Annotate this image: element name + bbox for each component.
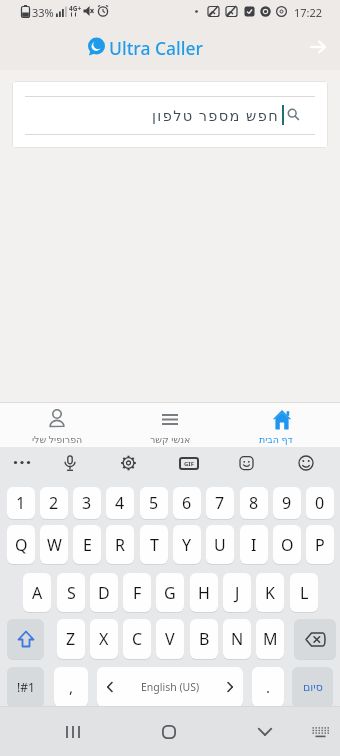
staticText: S	[67, 582, 76, 604]
button[interactable]	[7, 619, 44, 659]
button[interactable]	[13, 460, 31, 465]
staticText: C	[132, 628, 143, 650]
button[interactable]: N	[223, 619, 251, 659]
staticText: L	[300, 582, 309, 604]
staticText: חפש מספר טלפון	[152, 105, 280, 125]
button[interactable]: F	[123, 573, 151, 612]
button[interactable]: K	[256, 573, 284, 612]
button[interactable]: 5	[140, 487, 168, 519]
staticText: הפרופיל שלי	[32, 433, 83, 446]
button[interactable]	[310, 40, 327, 54]
staticText: M	[263, 628, 278, 650]
button[interactable]: B	[190, 619, 218, 659]
button[interactable]	[312, 727, 329, 738]
button[interactable]: 0	[306, 487, 334, 519]
button[interactable]	[239, 455, 254, 471]
staticText: H	[198, 582, 210, 604]
button[interactable]: G	[156, 573, 184, 612]
staticText: 4G+	[69, 4, 82, 13]
button[interactable]: C	[123, 619, 151, 659]
staticText: !#1	[17, 679, 35, 695]
button[interactable]: D	[90, 573, 118, 612]
button[interactable]	[121, 455, 136, 471]
staticText: D	[98, 582, 110, 604]
button[interactable]: I	[240, 525, 268, 564]
button[interactable]: 9	[273, 487, 301, 519]
staticText: GIF	[184, 460, 194, 468]
button[interactable]	[294, 619, 336, 659]
staticText: 3	[82, 492, 92, 514]
staticText: English (US)	[141, 680, 200, 694]
staticText: .	[266, 677, 271, 697]
button[interactable]: הפרופיל שלי	[17, 403, 97, 447]
button[interactable]: 7	[206, 487, 234, 519]
button[interactable]: 3	[73, 487, 101, 519]
button[interactable]: 2	[40, 487, 68, 519]
staticText: I	[251, 534, 257, 556]
button[interactable]: אנשי קשר	[130, 403, 210, 447]
staticText: ,	[69, 677, 74, 697]
button[interactable]: V	[156, 619, 184, 659]
staticText: 6	[182, 492, 192, 514]
button[interactable]: L	[290, 573, 318, 612]
staticText: Z	[66, 628, 76, 650]
staticText: 5	[149, 492, 159, 514]
button[interactable]: O	[273, 525, 301, 564]
button[interactable]: S	[57, 573, 85, 612]
button[interactable]: T	[140, 525, 168, 564]
staticText: R	[115, 534, 125, 556]
button[interactable]: R	[106, 525, 134, 564]
button[interactable]	[258, 728, 272, 736]
staticText: סיום	[303, 681, 323, 694]
button[interactable]: 6	[173, 487, 201, 519]
staticText: N	[231, 628, 244, 650]
staticText: Y	[182, 534, 192, 556]
staticText: J	[235, 582, 240, 604]
button[interactable]: English (US)	[97, 667, 243, 707]
button[interactable]: W	[40, 525, 68, 564]
staticText: K	[265, 582, 275, 604]
staticText: B	[199, 628, 210, 650]
button[interactable]: ,	[54, 667, 88, 707]
button[interactable]	[298, 455, 314, 471]
staticText: Q	[15, 534, 28, 556]
button[interactable]: A	[23, 573, 51, 612]
staticText: W	[47, 534, 62, 556]
button[interactable]: E	[73, 525, 101, 564]
staticText: 8	[249, 492, 259, 514]
button[interactable]	[66, 726, 80, 738]
button[interactable]: X	[90, 619, 118, 659]
button[interactable]: GIF	[179, 457, 199, 470]
button[interactable]: Q	[7, 525, 35, 564]
button[interactable]: P	[306, 525, 334, 564]
staticText: 17:22	[294, 5, 323, 20]
staticText: T	[150, 534, 159, 556]
button[interactable]: .	[252, 667, 284, 707]
button[interactable]: Y	[173, 525, 201, 564]
button[interactable]: חפש מספר טלפון	[12, 81, 328, 148]
button[interactable]: Z	[57, 619, 85, 659]
button[interactable]: U	[206, 525, 234, 564]
button[interactable]: M	[256, 619, 284, 659]
staticText: P	[315, 534, 325, 556]
staticText: E	[83, 534, 92, 556]
staticText: X	[99, 628, 109, 650]
button[interactable]: J	[223, 573, 251, 612]
staticText: F	[133, 582, 142, 604]
button[interactable]: דף הבית	[236, 403, 316, 447]
button[interactable]: סיום	[292, 667, 333, 707]
button[interactable]: 4	[106, 487, 134, 519]
button[interactable]: 1	[7, 487, 35, 519]
button[interactable]: H	[190, 573, 218, 612]
staticText: U	[214, 534, 226, 556]
button[interactable]	[162, 725, 176, 739]
button[interactable]: 8	[240, 487, 268, 519]
staticText: O	[281, 534, 294, 556]
button[interactable]: !#1	[7, 667, 44, 707]
staticText: V	[165, 628, 175, 650]
staticText: 7	[215, 492, 225, 514]
staticText: 33%	[32, 5, 54, 20]
button[interactable]	[63, 455, 77, 472]
staticText: אנשי קשר	[150, 433, 191, 446]
staticText: דף הבית	[259, 433, 293, 446]
